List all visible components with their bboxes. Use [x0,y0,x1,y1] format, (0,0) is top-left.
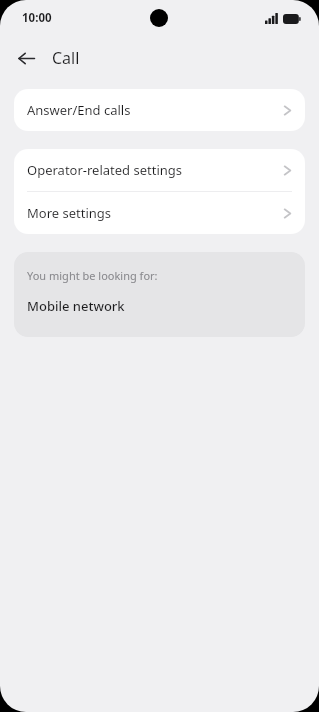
staticText: 10:00 [22,10,52,26]
button[interactable]: Operator-related settings [14,149,305,191]
staticText: Mobile network [27,297,125,315]
button[interactable]: More settings [14,192,305,234]
button[interactable]: Answer/End calls [14,89,305,131]
staticText: You might be looking for: [27,268,158,283]
staticText: Call [52,47,80,69]
button[interactable]: Mobile network [14,297,305,317]
staticText: Operator-related settings [27,161,183,179]
button[interactable]: Back [8,40,44,76]
staticText: More settings [27,204,112,222]
staticText: Answer/End calls [27,101,131,119]
